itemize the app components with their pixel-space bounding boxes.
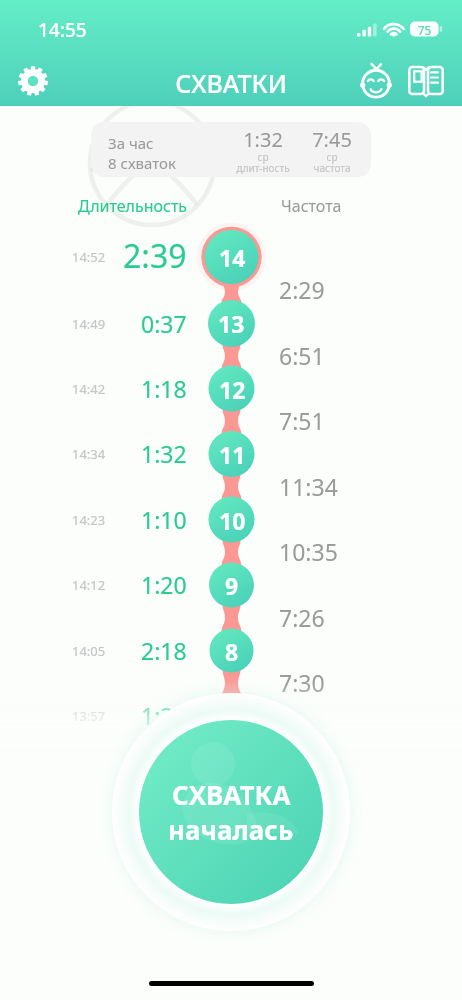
staticText: 14:49 <box>72 315 106 333</box>
staticText: 1:32 <box>218 126 308 153</box>
staticText: 8 схваток <box>108 153 176 173</box>
staticText: 6:51 <box>279 340 325 371</box>
staticText: 2:39 <box>123 234 187 278</box>
staticText: 7:26 <box>279 602 325 633</box>
staticText: 1:18 <box>141 373 187 404</box>
staticText: 13 <box>218 308 245 339</box>
staticText: 11:34 <box>279 471 338 502</box>
staticText: 7:45 <box>287 126 371 153</box>
staticText: 14 <box>219 242 246 273</box>
staticText: 11 <box>219 439 246 470</box>
staticText: 14:34 <box>72 445 106 463</box>
staticText: длит-ность <box>218 161 308 175</box>
staticText: 1:32 <box>141 438 187 469</box>
staticText: 7:30 <box>279 667 325 698</box>
button[interactable]: СХВАТКА <box>139 720 323 904</box>
staticText: 75 <box>410 22 439 38</box>
staticText: ср <box>218 150 308 164</box>
staticText: 14:12 <box>72 576 106 594</box>
staticText: 7 <box>225 701 239 732</box>
staticText: 0:37 <box>141 308 187 339</box>
button[interactable]: За час <box>91 122 371 177</box>
staticText: 2:18 <box>141 635 187 666</box>
staticText: 8 <box>225 636 239 667</box>
staticText: 12 <box>219 374 246 405</box>
button[interactable]: Baby profile <box>354 59 398 103</box>
staticText: 10:35 <box>279 536 338 567</box>
staticText: СХВАТКА <box>172 777 291 812</box>
staticText: Частота <box>281 195 342 217</box>
button[interactable]: Guide <box>404 59 448 103</box>
staticText: За час <box>108 133 154 153</box>
button[interactable]: Settings <box>11 59 55 103</box>
staticText: 7:51 <box>279 405 325 436</box>
staticText: 14:55 <box>38 17 87 43</box>
staticText: 1:20 <box>141 569 187 600</box>
staticText: 2:29 <box>279 274 325 305</box>
staticText: 14:05 <box>72 642 106 660</box>
staticText: 9 <box>225 570 239 601</box>
staticText: 1:20 <box>141 700 187 731</box>
staticText: СХВАТКИ <box>0 66 462 100</box>
staticText: 10 <box>219 505 246 536</box>
staticText: 13:57 <box>72 707 106 725</box>
staticText: ср <box>287 150 371 164</box>
staticText: Длительность <box>78 195 188 217</box>
staticText: 1:10 <box>141 504 187 535</box>
staticText: частота <box>287 161 371 175</box>
staticText: 14:23 <box>72 511 106 529</box>
staticText: 14:52 <box>72 248 106 266</box>
staticText: началась <box>168 812 294 847</box>
staticText: 14:42 <box>72 380 106 398</box>
